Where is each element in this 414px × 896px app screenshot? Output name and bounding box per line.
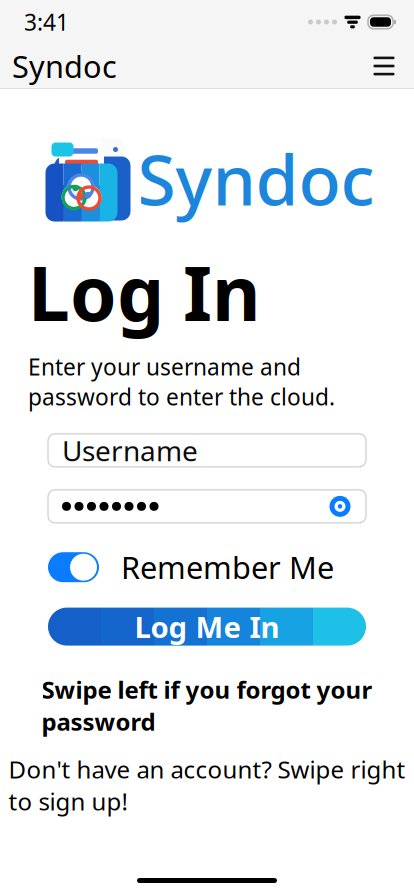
staticText: Syndoc (137, 132, 374, 225)
staticText: Enter your username and password to ente… (28, 352, 335, 412)
staticText: Log Me In (134, 607, 279, 646)
button[interactable]: Menu (362, 44, 406, 88)
staticText: Log In (28, 242, 261, 342)
staticText: Don't have an account? Swipe right to si… (8, 753, 405, 817)
button[interactable]: Password (48, 490, 366, 523)
staticText: Syndoc (12, 46, 117, 86)
staticText: Username (62, 432, 198, 469)
staticText: Swipe left if you forgot your password (41, 674, 372, 737)
button[interactable]: Remember Me (48, 552, 99, 582)
button[interactable]: Log Me In (48, 608, 366, 646)
staticText: 3:41 (24, 7, 69, 37)
button[interactable]: Username (48, 434, 366, 467)
staticText: Remember Me (121, 547, 334, 588)
